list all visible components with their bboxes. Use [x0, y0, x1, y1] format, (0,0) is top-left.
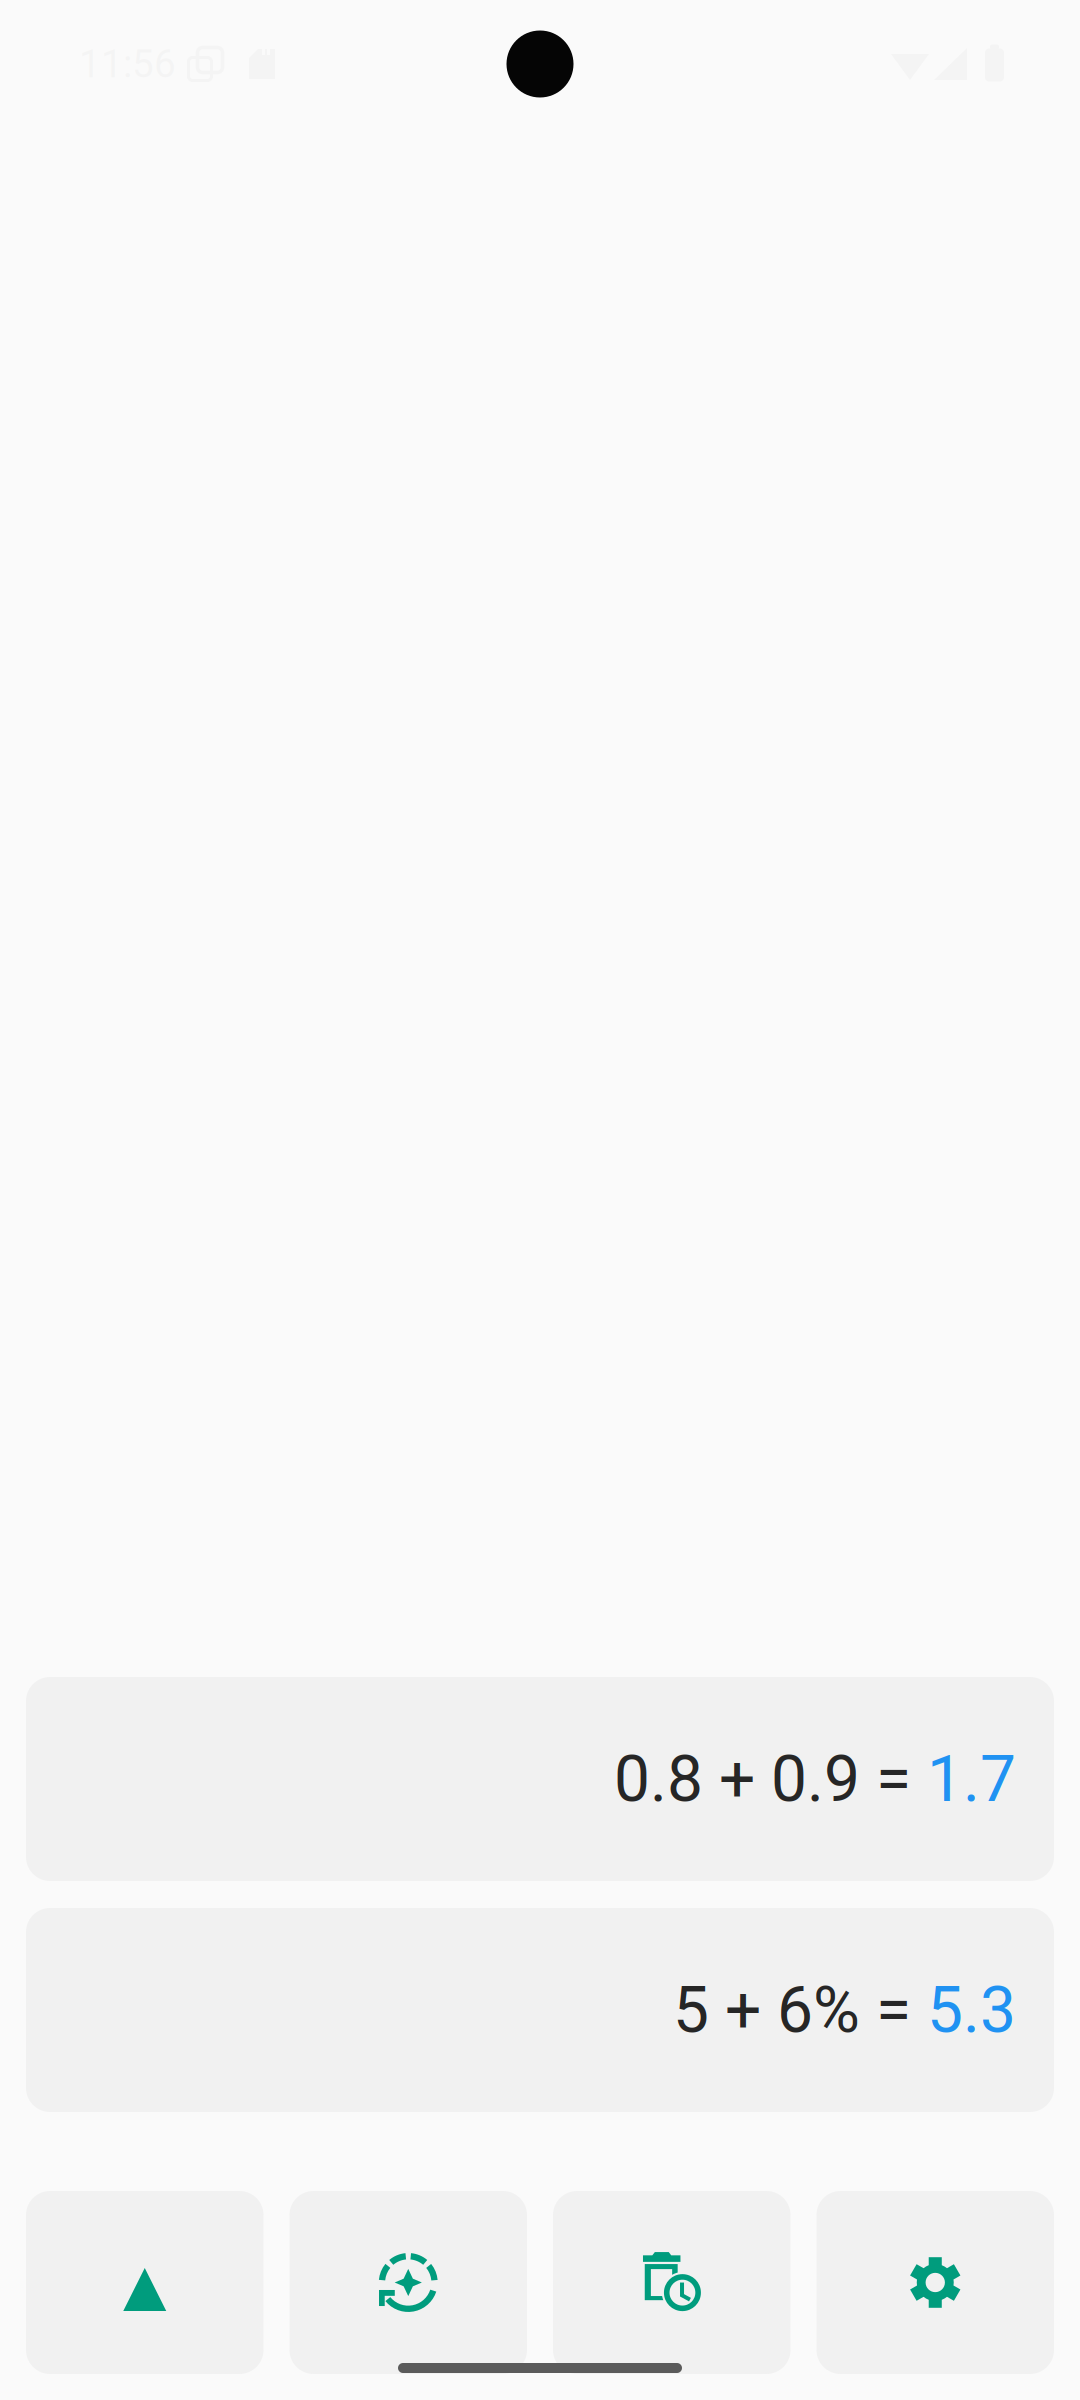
button[interactable]: Clear history	[553, 2191, 790, 2374]
staticText: 5.3	[927, 1972, 1016, 2047]
button[interactable]: Settings	[816, 2191, 1054, 2374]
staticText: 5 + 6% =	[673, 1972, 927, 2047]
button[interactable]: Auto calculate	[289, 2191, 527, 2374]
button[interactable]: 0.8 + 0.9 =	[26, 1677, 1054, 1881]
button[interactable]: 5 + 6% =	[26, 1908, 1054, 2112]
staticText: 1.7	[927, 1741, 1016, 1816]
staticText: 0.8 + 0.9 =	[614, 1741, 927, 1816]
button[interactable]: Show keypad	[26, 2191, 263, 2374]
